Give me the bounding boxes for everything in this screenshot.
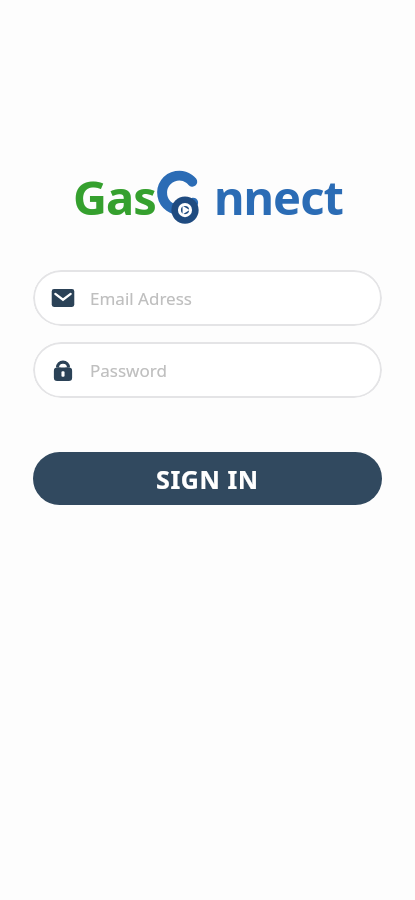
staticText: SIGN IN — [156, 462, 259, 496]
staticText: nnect — [214, 165, 343, 229]
button[interactable]: Email Adress — [33, 270, 382, 326]
staticText: Password — [90, 359, 167, 382]
staticText: Email Adress — [90, 287, 192, 310]
staticText: Gas — [73, 165, 156, 229]
button[interactable]: Password — [33, 342, 382, 398]
button[interactable]: SIGN IN — [33, 452, 382, 505]
